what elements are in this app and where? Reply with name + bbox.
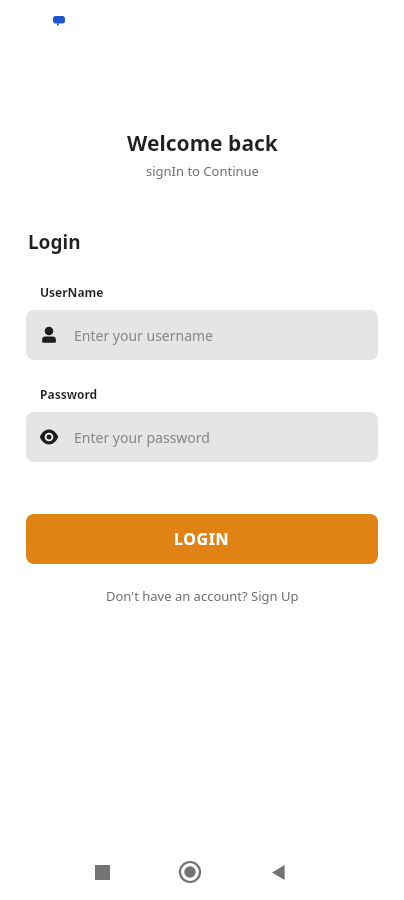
staticText: Don't have an account? Sign Up [106,587,299,605]
staticText: Login [28,229,81,255]
button[interactable]: Show password [26,412,378,462]
button[interactable]: Don't have an account? Sign Up [100,584,305,608]
staticText: Enter your username [74,326,214,345]
other: Show password [38,426,60,448]
staticText: signIn to Continue [146,162,259,180]
other: Username [38,324,60,346]
staticText: UserName [40,284,104,300]
button[interactable]: Home [166,848,214,896]
button[interactable]: Username [26,310,378,360]
button[interactable]: LOGIN [26,514,378,564]
staticText: Welcome back [127,129,278,158]
button[interactable]: Recents [78,848,126,896]
button[interactable]: Back [254,848,302,896]
staticText: LOGIN [174,528,230,550]
staticText: Enter your password [74,428,210,447]
staticText: Password [40,386,98,402]
